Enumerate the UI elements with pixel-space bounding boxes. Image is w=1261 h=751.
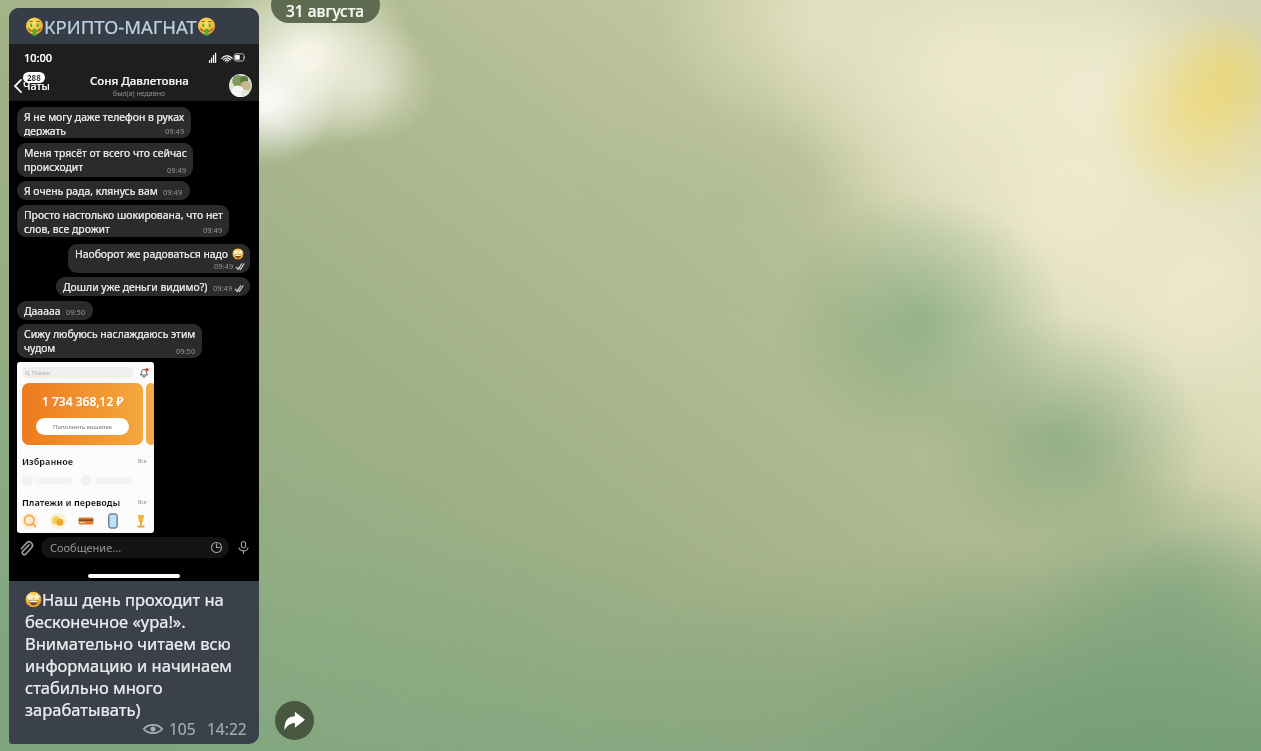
- staticText: Все: [138, 499, 147, 506]
- button[interactable]: Mobile top-up: [105, 513, 121, 529]
- staticText: информацию и начинаем: [25, 654, 232, 676]
- button[interactable]: Pay with card: [78, 513, 94, 529]
- staticText: КРИПТО-МАГНАТ: [44, 14, 197, 39]
- staticText: Дааааа: [24, 304, 61, 318]
- button[interactable]: Сообщение...: [41, 537, 229, 558]
- staticText: Просто настолько шокирована, что нет: [24, 208, 223, 222]
- staticText: происходит: [24, 160, 84, 174]
- button[interactable]: Дааааа: [17, 301, 93, 320]
- staticText: Наш день проходит на: [42, 588, 224, 610]
- button[interactable]: Сижу любуюсь наслаждаюсь этим: [17, 324, 202, 358]
- button[interactable]: Forward message: [275, 701, 314, 740]
- staticText: Избранное: [22, 455, 74, 467]
- staticText: 09:50: [176, 346, 196, 356]
- staticText: Внимательно читаем всю: [25, 632, 231, 654]
- staticText: слов, все дрожит: [24, 222, 110, 235]
- staticText: Я очень рада, клянусь вам: [24, 184, 158, 198]
- staticText: Чаты: [23, 78, 50, 93]
- button[interactable]: Notifications: [139, 368, 149, 378]
- staticText: бесконечное «ура!».: [25, 610, 186, 632]
- staticText: был(а) недавно: [113, 89, 166, 99]
- button[interactable]: Transfer money: [50, 513, 66, 529]
- staticText: Меня трясёт от всего что сейчас: [24, 146, 187, 160]
- button[interactable]: Пополнить кошелек: [36, 418, 129, 435]
- staticText: Пополнить кошелек: [53, 423, 113, 431]
- staticText: 09:49: [213, 283, 233, 293]
- staticText: Все: [138, 458, 147, 465]
- button[interactable]: Attach file: [18, 540, 33, 555]
- staticText: Я не могу даже телефон в руках: [24, 110, 185, 124]
- staticText: 14:22: [207, 718, 247, 739]
- button[interactable]: Я очень рада, клянусь вам: [17, 181, 190, 200]
- staticText: Сижу любуюсь наслаждаюсь этим: [24, 327, 196, 341]
- staticText: Сообщение...: [50, 540, 122, 555]
- staticText: 09:50: [66, 307, 86, 317]
- staticText: Поиск: [32, 369, 50, 377]
- staticText: Платежи и переводы: [22, 496, 121, 508]
- staticText: чудом: [24, 341, 56, 355]
- button[interactable]: Просто настолько шокирована, что нет: [17, 205, 229, 237]
- staticText: 09:49: [165, 126, 185, 136]
- staticText: 09:49: [167, 165, 187, 175]
- button[interactable]: Поиск: [22, 367, 133, 378]
- staticText: 09:49: [203, 225, 223, 235]
- button[interactable]: Дошли уже деньги видимо?): [56, 277, 250, 296]
- staticText: Дошли уже деньги видимо?): [63, 280, 208, 294]
- button[interactable]: Наоборот же радоваться надо: [68, 244, 250, 273]
- staticText: 105: [169, 718, 196, 739]
- staticText: 09:49: [214, 261, 234, 271]
- button[interactable]: Все: [136, 497, 149, 508]
- button[interactable]: Все: [136, 456, 149, 467]
- staticText: Соня Давлетовна: [90, 73, 189, 89]
- staticText: стабильно много: [25, 676, 163, 698]
- staticText: 10:00: [24, 50, 53, 65]
- button[interactable]: Search payments: [22, 513, 38, 529]
- staticText: 31 августа: [286, 0, 365, 21]
- staticText: 288: [27, 72, 41, 83]
- staticText: 09:49: [163, 187, 183, 197]
- staticText: держать: [24, 124, 66, 136]
- staticText: 1 734 368,12 ₽: [42, 393, 124, 409]
- button[interactable]: 31 августа: [271, 0, 380, 23]
- button[interactable]: Я не могу даже телефон в руках: [17, 107, 191, 138]
- button[interactable]: Profile photo: [229, 74, 252, 97]
- button[interactable]: Back to chats, 288 unread: [14, 78, 50, 93]
- button[interactable]: Rewards: [133, 513, 149, 529]
- button[interactable]: Record voice message: [237, 541, 250, 554]
- button[interactable]: Меня трясёт от всего что сейчас: [17, 143, 193, 177]
- staticText: Наоборот же радоваться надо: [75, 247, 229, 261]
- staticText: зарабатывать): [25, 698, 141, 720]
